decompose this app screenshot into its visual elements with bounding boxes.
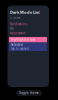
staticText: On: [10, 27, 14, 30]
staticText: Appearance: [10, 31, 26, 35]
staticText: Tap to expand: [11, 47, 29, 50]
staticText: Dark Mode List: [10, 9, 40, 15]
staticText: Selected: [11, 43, 23, 46]
staticText: Toggle theme: [19, 91, 39, 95]
staticText: Notifications: [10, 22, 27, 26]
staticText: 4 items: [10, 16, 20, 20]
staticText: Highlighted row: [11, 38, 35, 41]
